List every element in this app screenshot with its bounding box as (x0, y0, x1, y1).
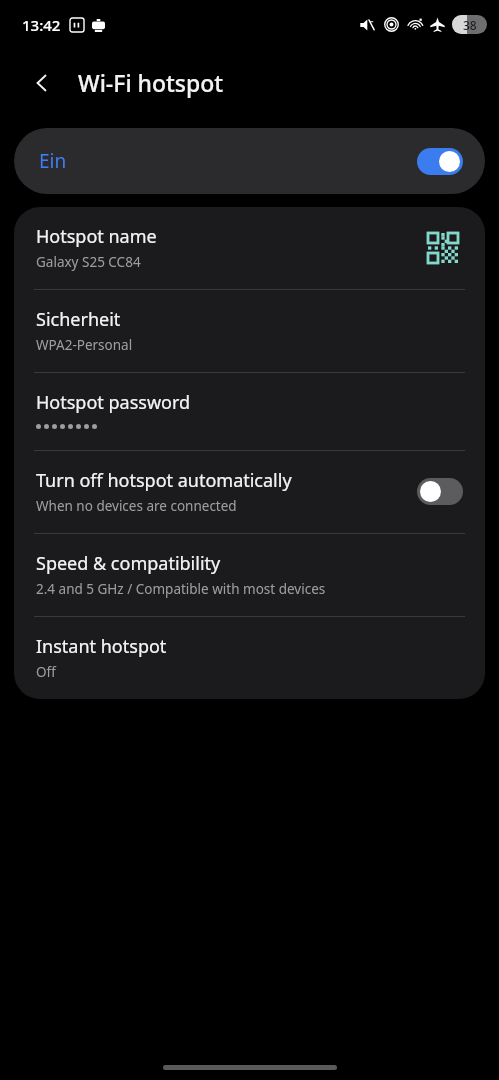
staticText: Instant hotspot (36, 634, 167, 659)
staticText: Sicherheit (36, 307, 121, 332)
staticText: When no devices are connected (36, 497, 237, 515)
staticText: 13:42 (22, 15, 61, 35)
staticText: WPA2-Personal (36, 336, 133, 354)
staticText: Hotspot password (36, 390, 191, 415)
button[interactable]: Off (417, 478, 463, 505)
staticText: Hotspot name (36, 224, 157, 249)
button[interactable]: Turn off hotspot automatically (14, 451, 485, 533)
staticText: Speed & compatibility (36, 551, 221, 576)
button[interactable]: Ein (14, 128, 485, 194)
button[interactable]: Show QR code (423, 228, 463, 268)
staticText: 38 (463, 17, 477, 33)
staticText: Wi-Fi hotspot (78, 67, 224, 98)
staticText: Ein (39, 148, 67, 174)
staticText: Galaxy S25 CC84 (36, 253, 141, 271)
staticText: Off (36, 663, 56, 681)
button[interactable]: Sicherheit (14, 290, 485, 372)
button[interactable]: On (417, 148, 463, 175)
button[interactable]: Speed & compatibility (14, 534, 485, 616)
button[interactable]: Hotspot name (14, 207, 485, 289)
button[interactable]: Instant hotspot (14, 617, 485, 699)
staticText: 2.4 and 5 GHz / Compatible with most dev… (36, 580, 326, 598)
button[interactable]: Hotspot password (14, 373, 485, 450)
staticText: Turn off hotspot automatically (36, 468, 292, 493)
button[interactable]: Back (22, 63, 62, 103)
